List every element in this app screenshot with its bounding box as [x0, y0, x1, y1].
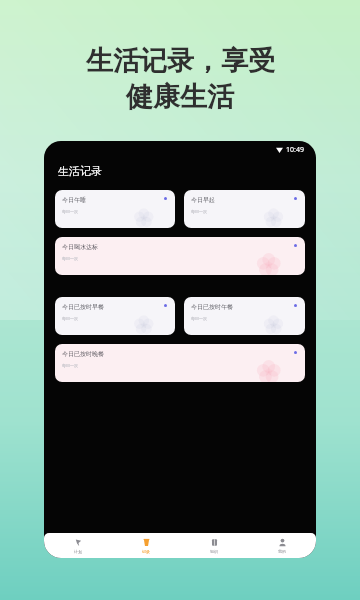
button[interactable]: 知识 — [180, 533, 248, 558]
button[interactable]: 今日早起 — [184, 190, 305, 228]
button[interactable]: 今日已按时早餐 — [55, 297, 175, 335]
staticText: 我的 — [278, 549, 286, 554]
staticText: 每日一次 — [191, 209, 207, 214]
staticText: 计划 — [74, 549, 82, 554]
staticText: 今日已按时晚餐 — [62, 350, 104, 358]
button[interactable]: 计划 — [44, 533, 112, 558]
staticText: 每日一次 — [62, 209, 78, 214]
staticText: 每日一次 — [62, 316, 78, 321]
button[interactable]: 我的 — [248, 533, 316, 558]
button[interactable]: 今日午睡 — [55, 190, 175, 228]
button[interactable]: 今日已按时晚餐 — [55, 344, 305, 382]
button[interactable]: 今日已按时午餐 — [184, 297, 305, 335]
staticText: 每日一次 — [62, 256, 78, 261]
staticText: 今日已按时早餐 — [62, 303, 104, 311]
staticText: 今日午睡 — [62, 196, 86, 204]
staticText: 每日一次 — [191, 316, 207, 321]
staticText: 今日喝水达标 — [62, 243, 98, 251]
staticText: 生活记录，享受 — [86, 44, 275, 78]
staticText: 记录 — [142, 549, 150, 554]
staticText: 今日已按时午餐 — [191, 303, 233, 311]
staticText: 今日早起 — [191, 196, 215, 204]
staticText: 10:49 — [286, 145, 304, 155]
staticText: 知识 — [210, 549, 218, 554]
button[interactable]: 今日喝水达标 — [55, 237, 305, 275]
staticText: 每日一次 — [62, 363, 78, 368]
button[interactable]: 记录 — [112, 533, 180, 558]
staticText: 健康生活 — [126, 80, 234, 114]
staticText: 生活记录 — [58, 164, 102, 178]
